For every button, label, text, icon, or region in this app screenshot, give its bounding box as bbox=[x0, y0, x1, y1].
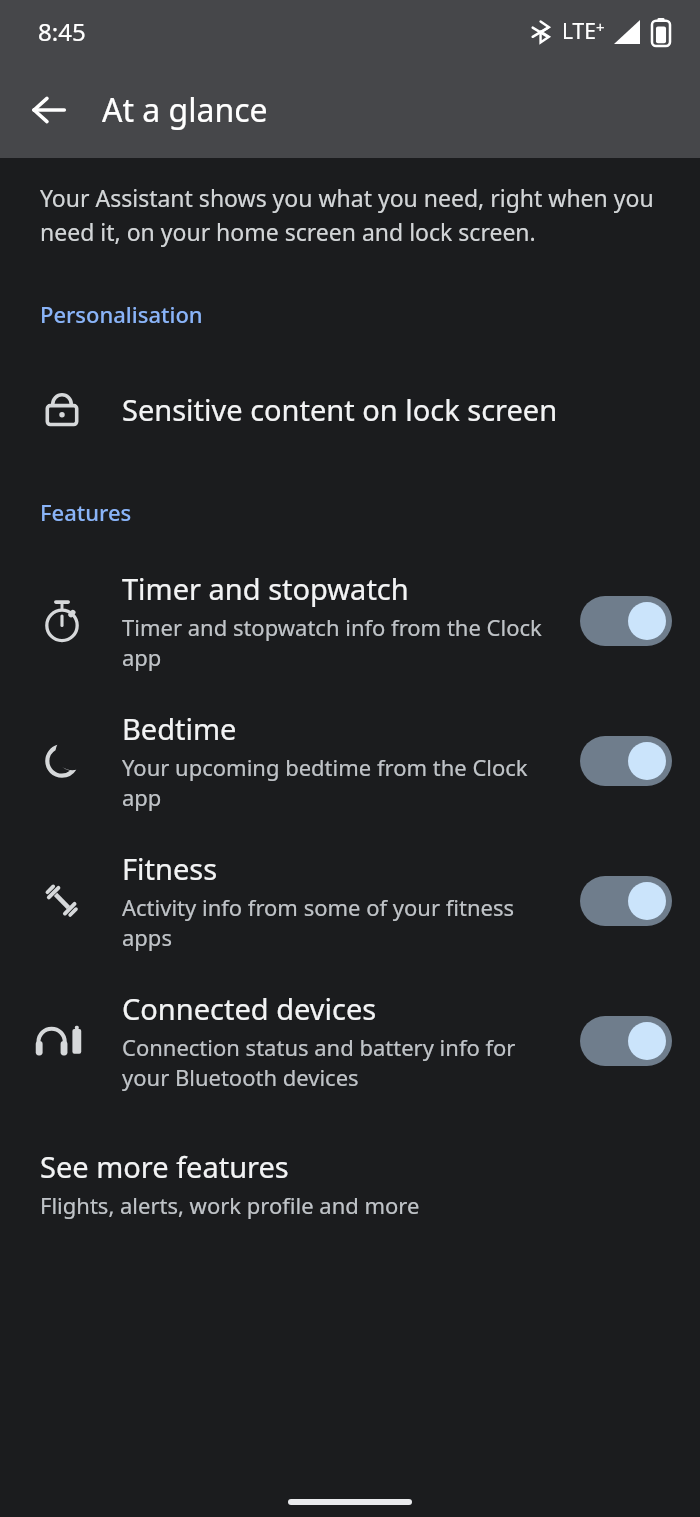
staticText: Activity info from some of your fitness … bbox=[122, 892, 566, 953]
staticText: At a glance bbox=[102, 88, 268, 132]
button[interactable]: Connected devices bbox=[0, 985, 700, 1097]
button[interactable]: Toggle on bbox=[580, 596, 672, 646]
staticText: See more features bbox=[40, 1147, 289, 1186]
staticText: Timer and stopwatch bbox=[122, 569, 409, 608]
button[interactable]: Back bbox=[14, 75, 84, 145]
staticText: Bedtime bbox=[122, 709, 237, 748]
staticText: Connected devices bbox=[122, 989, 377, 1028]
button[interactable]: Toggle on bbox=[580, 1016, 672, 1066]
staticText: Fitness bbox=[122, 849, 218, 888]
staticText: Features bbox=[40, 497, 132, 527]
staticText: Connection status and battery info for y… bbox=[122, 1032, 566, 1093]
staticText: 8:45 bbox=[38, 15, 86, 48]
button[interactable]: Bedtime bbox=[0, 705, 700, 817]
staticText: LTE bbox=[562, 17, 596, 46]
staticText: Sensitive content on lock screen bbox=[122, 390, 558, 429]
button[interactable]: See more features bbox=[0, 1141, 700, 1230]
button[interactable]: Timer and stopwatch bbox=[0, 565, 700, 677]
button[interactable]: Toggle on bbox=[580, 876, 672, 926]
staticText: Your Assistant shows you what you need, … bbox=[40, 182, 654, 247]
staticText: Timer and stopwatch info from the Clock … bbox=[122, 612, 566, 673]
button[interactable]: Sensitive content on lock screen bbox=[0, 371, 700, 447]
staticText: Flights, alerts, work profile and more bbox=[40, 1190, 420, 1220]
button[interactable]: Toggle on bbox=[580, 736, 672, 786]
staticText: Your upcoming bedtime from the Clock app bbox=[122, 752, 566, 813]
button[interactable]: Fitness bbox=[0, 845, 700, 957]
staticText: Personalisation bbox=[40, 299, 203, 329]
staticText: + bbox=[596, 17, 605, 37]
